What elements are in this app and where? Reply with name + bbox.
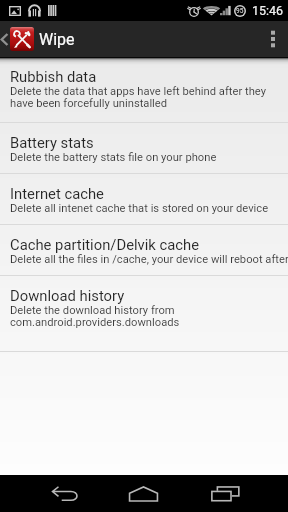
button[interactable]: More options	[258, 21, 288, 57]
staticText: Cache partition/Delvik cache	[10, 236, 200, 253]
staticText: Delete the download history from com.and…	[10, 304, 180, 329]
staticText: Download history	[10, 287, 125, 304]
staticText: Battery stats	[10, 134, 94, 151]
staticText: Delete the battery stats file on your ph…	[10, 151, 217, 164]
button[interactable]: Back	[0, 475, 96, 512]
staticText: 15:46	[252, 3, 284, 18]
button[interactable]: Rubbish data	[0, 57, 288, 122]
button[interactable]: Battery stats	[0, 123, 288, 173]
staticText: Delete all intenet cache that is stored …	[10, 202, 269, 215]
button[interactable]: Internet cache	[0, 174, 288, 224]
button[interactable]: Download history	[0, 276, 288, 351]
button[interactable]: Recent apps	[192, 475, 288, 512]
button[interactable]: Cache partition/Delvik cache	[0, 225, 288, 275]
staticText: 95	[236, 7, 244, 15]
staticText: Internet cache	[10, 185, 104, 202]
staticText: Delete the data that apps have left behi…	[10, 85, 266, 110]
button[interactable]: Home	[96, 475, 192, 512]
staticText: Delete all the files in /cache, your dev…	[10, 253, 288, 266]
staticText: Rubbish data	[10, 68, 97, 85]
staticText: Wipe	[39, 30, 75, 49]
button[interactable]: Navigate up	[0, 21, 34, 57]
